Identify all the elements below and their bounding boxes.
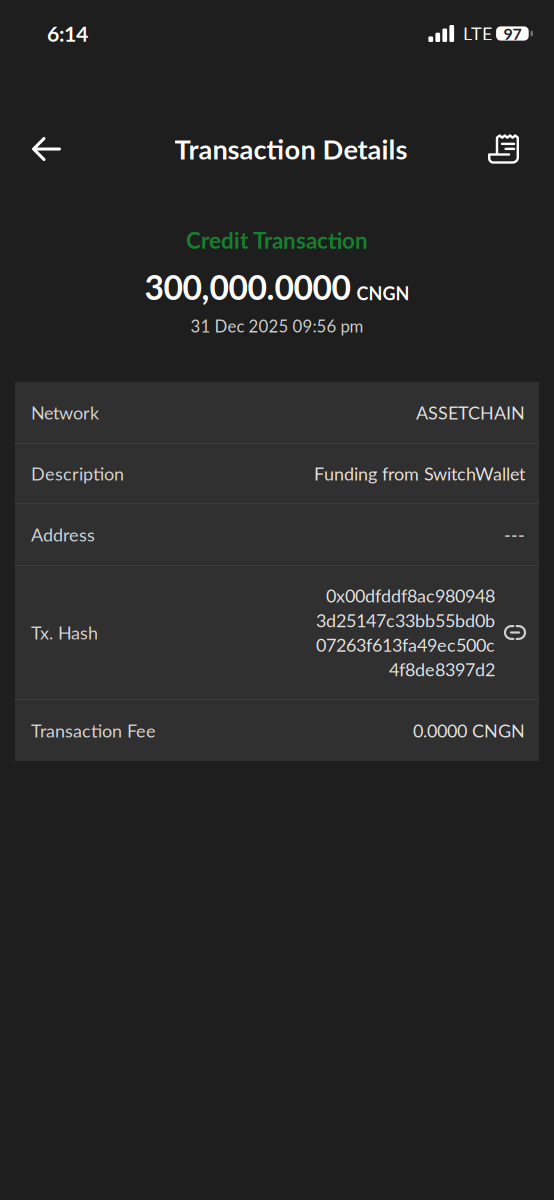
button[interactable]: Copy transaction hash xyxy=(503,623,527,641)
staticText: Funding from SwitchWallet xyxy=(314,463,525,484)
staticText: 4f8de8397d2 xyxy=(389,659,495,680)
staticText: 97 xyxy=(503,24,521,43)
staticText: Network xyxy=(31,402,99,423)
staticText: 0x00dfddf8ac980948 xyxy=(326,585,495,606)
button[interactable]: Receipt xyxy=(475,120,532,177)
staticText: 0.0000 CNGN xyxy=(413,720,525,741)
staticText: Address xyxy=(31,524,95,545)
staticText: --- xyxy=(504,524,525,545)
staticText: Description xyxy=(31,463,124,484)
button[interactable]: Back xyxy=(21,121,72,177)
staticText: LTE xyxy=(463,23,492,44)
staticText: 300,000.0000 xyxy=(144,267,350,307)
staticText: Transaction Details xyxy=(174,133,407,165)
staticText: Tx. Hash xyxy=(31,622,98,643)
staticText: Transaction Fee xyxy=(31,720,156,741)
staticText: CNGN xyxy=(356,283,409,304)
staticText: 6:14 xyxy=(47,21,88,46)
staticText: 3d25147c33bb55bd0b xyxy=(316,609,495,631)
staticText: ASSETCHAIN xyxy=(416,402,525,423)
staticText: Credit Transaction xyxy=(186,227,368,253)
staticText: 31 Dec 2025 09:56 pm xyxy=(190,316,363,336)
staticText: 07263f613fa49ec500c xyxy=(316,634,495,656)
